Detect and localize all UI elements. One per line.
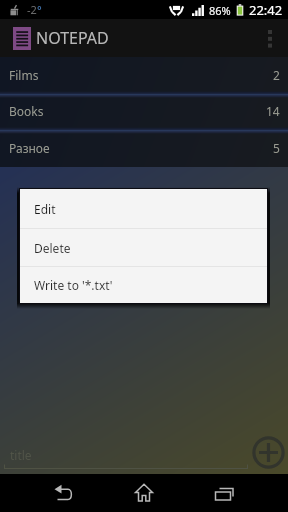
staticText: 14 — [266, 103, 280, 119]
button[interactable]: Back — [40, 474, 88, 512]
button[interactable]: Write to '*.txt' — [20, 267, 267, 303]
button[interactable]: Recent apps — [200, 474, 248, 512]
staticText: 2 — [273, 67, 280, 83]
staticText: Films — [9, 67, 39, 83]
button[interactable]: Films — [0, 57, 288, 93]
staticText: 22:42 — [249, 1, 283, 19]
button[interactable]: Разное — [0, 129, 288, 167]
staticText: 86% — [209, 3, 231, 18]
staticText: Delete — [34, 240, 71, 256]
button[interactable]: Delete — [20, 229, 267, 266]
button[interactable]: Add note — [251, 435, 286, 470]
staticText: Books — [9, 103, 44, 119]
button[interactable]: Edit — [20, 189, 267, 228]
button[interactable]: Home — [120, 474, 168, 512]
button[interactable]: Books — [0, 93, 288, 129]
staticText: Edit — [34, 201, 56, 217]
staticText: 5 — [273, 140, 280, 156]
staticText: -2 — [27, 2, 37, 17]
button[interactable]: More options — [257, 19, 283, 57]
staticText: Write to '*.txt' — [34, 277, 113, 293]
staticText: NOTEPAD — [36, 27, 109, 49]
staticText: ° — [37, 2, 42, 17]
staticText: title — [10, 447, 32, 463]
staticText: Разное — [9, 140, 50, 156]
